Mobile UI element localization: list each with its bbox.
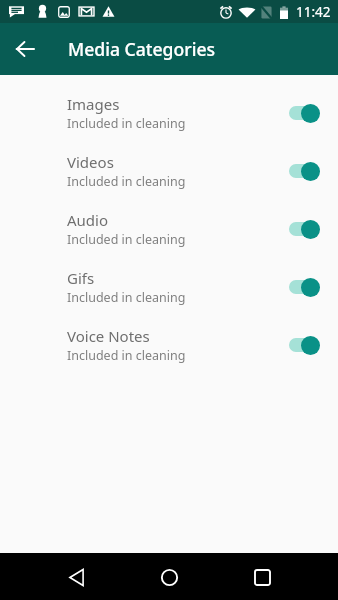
staticText: Images bbox=[67, 94, 120, 114]
staticText: Included in cleaning bbox=[67, 173, 186, 190]
button[interactable]: Videos bbox=[0, 142, 338, 200]
button[interactable]: Images bbox=[0, 84, 338, 142]
staticText: Included in cleaning bbox=[67, 231, 186, 248]
staticText: Included in cleaning bbox=[67, 347, 186, 364]
button[interactable]: Back bbox=[7, 31, 43, 67]
staticText: Voice Notes bbox=[67, 326, 150, 346]
button[interactable]: Home bbox=[146, 554, 192, 600]
staticText: Included in cleaning bbox=[67, 289, 186, 306]
button[interactable]: Voice Notes bbox=[0, 316, 338, 374]
button[interactable]: Audio bbox=[0, 200, 338, 258]
staticText: Gifs bbox=[67, 268, 95, 288]
staticText: Included in cleaning bbox=[67, 115, 186, 132]
button[interactable]: Back bbox=[53, 554, 99, 600]
staticText: 11:42 bbox=[296, 3, 331, 21]
button[interactable]: Gifs bbox=[0, 258, 338, 316]
staticText: Videos bbox=[67, 152, 114, 172]
button[interactable]: Recents bbox=[239, 554, 285, 600]
staticText: Media Categories bbox=[68, 37, 216, 61]
staticText: Audio bbox=[67, 210, 109, 230]
